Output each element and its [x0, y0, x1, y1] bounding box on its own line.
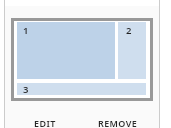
button[interactable]: 1 — [17, 22, 115, 79]
button[interactable]: EDIT — [25, 116, 65, 128]
button[interactable]: 2 — [118, 22, 146, 79]
staticText: 2 — [126, 24, 132, 37]
staticText: 1 — [23, 24, 29, 37]
button[interactable]: 3 — [17, 83, 146, 95]
button[interactable]: REMOVE — [90, 116, 146, 128]
staticText: REMOVE — [98, 117, 138, 128]
staticText: 3 — [23, 83, 29, 95]
staticText: EDIT — [34, 117, 56, 128]
